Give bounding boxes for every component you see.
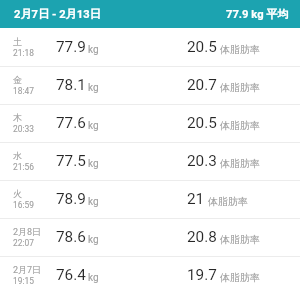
staticText: 21:56 [13, 162, 34, 172]
button[interactable]: 金 [0, 66, 300, 104]
staticText: 体脂肪率 [220, 233, 260, 246]
staticText: 22:07 [13, 238, 34, 248]
staticText: 18:47 [13, 86, 34, 96]
staticText: 20.8 [187, 228, 217, 246]
staticText: 77.9 [56, 38, 86, 56]
button[interactable]: 水 [0, 142, 300, 180]
staticText: 19:15 [13, 276, 34, 286]
staticText: 77.5 [56, 152, 86, 170]
staticText: 19.7 [187, 266, 217, 284]
button[interactable]: 2月8日 [0, 218, 300, 256]
staticText: kg [88, 234, 99, 246]
staticText: kg [88, 82, 99, 94]
staticText: 78.1 [56, 76, 86, 94]
staticText: 21 [187, 190, 205, 208]
button[interactable]: 木 [0, 104, 300, 142]
staticText: kg [88, 272, 99, 284]
staticText: 20.5 [187, 114, 217, 132]
staticText: 76.4 [56, 266, 86, 284]
staticText: 水 [13, 150, 22, 161]
staticText: kg [88, 196, 99, 208]
staticText: 21:18 [13, 48, 34, 58]
staticText: 火 [13, 188, 22, 199]
button[interactable]: 2月7日 [0, 256, 300, 291]
staticText: kg [88, 158, 99, 170]
staticText: 20.3 [187, 152, 217, 170]
staticText: 77.9 kg 平均 [226, 7, 289, 21]
staticText: 金 [13, 74, 22, 85]
button[interactable]: 火 [0, 180, 300, 218]
staticText: 体脂肪率 [220, 119, 260, 132]
staticText: 78.9 [56, 190, 86, 208]
staticText: 木 [13, 112, 22, 123]
staticText: 77.6 [56, 114, 86, 132]
staticText: kg [88, 120, 99, 132]
staticText: 体脂肪率 [208, 195, 248, 208]
staticText: 体脂肪率 [220, 81, 260, 94]
staticText: 2月7日 [13, 264, 42, 275]
button[interactable]: 土 [0, 28, 300, 66]
staticText: 体脂肪率 [220, 271, 260, 284]
staticText: 土 [13, 36, 22, 47]
button[interactable]: 2月7日 - 2月13日 [0, 0, 300, 28]
staticText: 78.6 [56, 228, 86, 246]
staticText: 20.7 [187, 76, 217, 94]
staticText: 2月7日 - 2月13日 [14, 7, 101, 21]
staticText: 20:33 [13, 124, 34, 134]
staticText: kg [88, 44, 99, 56]
staticText: 20.5 [187, 38, 217, 56]
staticText: 2月8日 [13, 226, 42, 237]
staticText: 体脂肪率 [220, 43, 260, 56]
staticText: 体脂肪率 [220, 157, 260, 170]
staticText: 16:59 [13, 200, 34, 210]
